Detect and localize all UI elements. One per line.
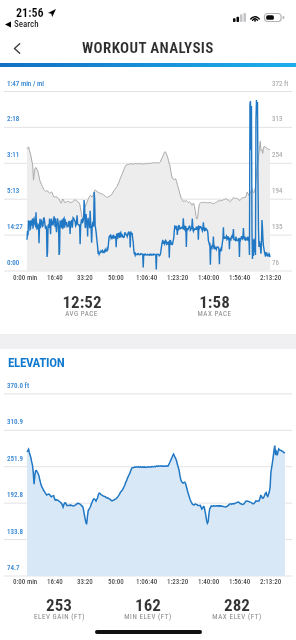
button[interactable]: 282 — [192, 595, 281, 623]
staticText: 16:40 — [47, 578, 63, 586]
staticText: 310.9 — [7, 418, 23, 426]
staticText: 194 — [272, 187, 283, 195]
staticText: 1:23:20 — [167, 274, 189, 282]
staticText: 135 — [272, 223, 283, 231]
staticText: 282 — [224, 595, 250, 615]
staticText: 0:00 min — [13, 274, 38, 282]
staticText: 33:20 — [77, 274, 93, 282]
button[interactable]: 162 — [103, 595, 192, 623]
staticText: 192.8 — [7, 491, 23, 499]
staticText: 50:00 — [108, 274, 124, 282]
button[interactable]: Back — [5, 36, 29, 60]
staticText: ELEVATION — [8, 355, 65, 370]
staticText: 1:58 — [199, 292, 230, 312]
staticText: 253 — [46, 595, 72, 615]
staticText: 5:13 — [7, 187, 20, 195]
staticText: MIN ELEV (FT) — [124, 613, 172, 621]
staticText: 1:23:20 — [167, 578, 189, 586]
staticText: 50:00 — [108, 578, 124, 586]
staticText: MAX PACE — [197, 310, 232, 318]
staticText: 74.7 — [7, 564, 20, 572]
staticText: 1:56:40 — [229, 274, 251, 282]
staticText: 3:11 — [7, 151, 20, 159]
staticText: 2:18 — [7, 115, 20, 123]
staticText: Search — [14, 19, 39, 30]
staticText: 370.0 ft — [7, 382, 29, 390]
staticText: AVG PACE — [65, 310, 98, 318]
staticText: 14:27 — [7, 223, 23, 231]
staticText: 2:13:20 — [260, 274, 282, 282]
staticText: 251.9 — [7, 455, 23, 463]
staticText: 76 — [272, 259, 279, 267]
staticText: 0:00 — [7, 259, 20, 267]
button[interactable]: 1:58 — [148, 292, 281, 320]
staticText: 254 — [272, 151, 283, 159]
staticText: 162 — [135, 595, 161, 615]
staticText: ELEV GAIN (FT) — [34, 613, 85, 621]
staticText: 133.8 — [7, 528, 23, 536]
staticText: 1:47 min / mi — [7, 80, 44, 88]
staticText: 12:52 — [62, 292, 102, 312]
staticText: 16:40 — [47, 274, 63, 282]
staticText: 1:40:00 — [198, 578, 220, 586]
staticText: 1:40:00 — [198, 274, 220, 282]
staticText: 21:56 — [16, 6, 44, 20]
staticText: 372 ft — [272, 80, 289, 88]
button[interactable]: 253 — [15, 595, 103, 623]
staticText: 2:13:20 — [260, 578, 282, 586]
staticText: 313 — [272, 115, 283, 123]
staticText: 33:20 — [77, 578, 93, 586]
staticText: 1:06:40 — [136, 274, 158, 282]
staticText: 1:56:40 — [229, 578, 251, 586]
staticText: 0:00 min — [13, 578, 38, 586]
staticText: WORKOUT ANALYSIS — [82, 39, 214, 57]
button[interactable]: 12:52 — [15, 292, 148, 320]
staticText: 1:06:40 — [136, 578, 158, 586]
staticText: MAX ELEV (FT) — [212, 613, 262, 621]
